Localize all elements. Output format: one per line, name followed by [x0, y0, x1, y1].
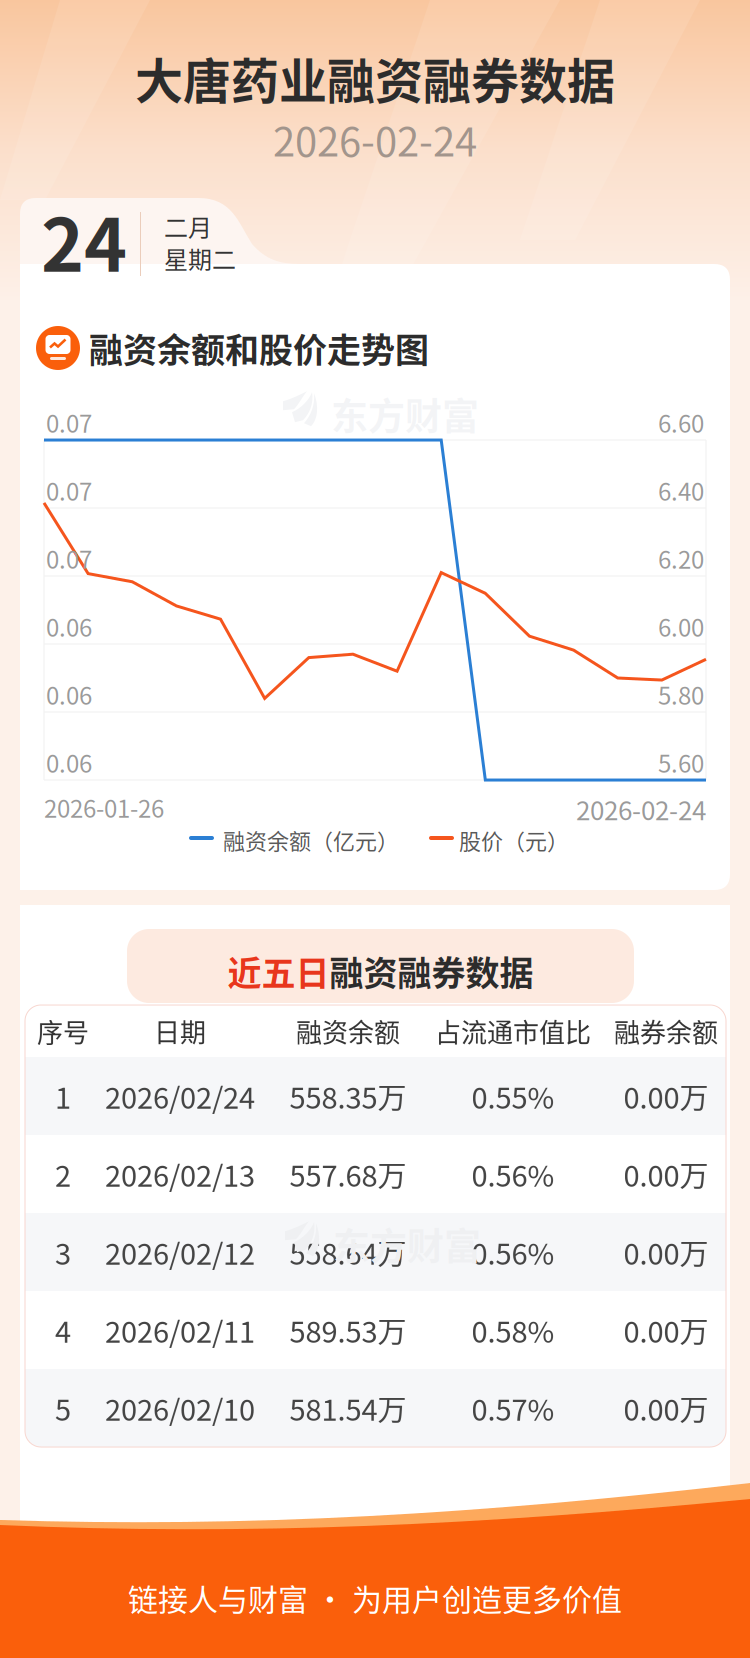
staticText: 0.00万: [623, 1231, 708, 1273]
staticText: 近五日: [227, 946, 329, 996]
staticText: 0.00万: [623, 1075, 708, 1117]
staticText: 2026/02/11: [105, 1309, 255, 1351]
staticText: 0.56%: [471, 1231, 554, 1273]
staticText: 558.64万: [289, 1231, 406, 1273]
staticText: 0.07: [46, 405, 92, 440]
staticText: 5: [55, 1387, 71, 1429]
staticText: 0.58%: [471, 1309, 554, 1351]
staticText: 5.60: [658, 745, 704, 780]
staticText: 融资余额: [296, 1012, 400, 1050]
staticText: 2026/02/24: [105, 1075, 255, 1117]
staticText: 558.35万: [289, 1075, 406, 1117]
staticText: 6.60: [658, 405, 704, 440]
staticText: 链接人与财富 · 为用户创造更多价值: [128, 1576, 622, 1619]
staticText: 6.40: [658, 473, 704, 508]
staticText: 3: [55, 1231, 71, 1273]
staticText: 日期: [154, 1012, 206, 1050]
staticText: 2026-02-24: [273, 110, 477, 168]
staticText: 东方财富: [331, 387, 479, 441]
staticText: 0.06: [46, 677, 92, 712]
staticText: 5.80: [658, 677, 704, 712]
staticText: 4: [55, 1309, 71, 1351]
staticText: 序号: [37, 1012, 89, 1050]
staticText: 0.00万: [623, 1153, 708, 1195]
staticText: 589.53万: [289, 1309, 406, 1351]
staticText: 6.00: [658, 609, 704, 644]
staticText: 2026-02-24: [576, 790, 706, 828]
staticText: 0.55%: [471, 1075, 554, 1117]
staticText: 星期二: [164, 241, 236, 276]
staticText: 占流通市值比: [435, 1012, 591, 1050]
staticText: 0.06: [46, 745, 92, 780]
staticText: 股价（元）: [459, 824, 569, 856]
staticText: 24: [41, 187, 127, 293]
staticText: 0.00万: [623, 1387, 708, 1429]
staticText: 融资余额和股价走势图: [89, 323, 429, 373]
staticText: 2026/02/12: [105, 1231, 255, 1273]
staticText: 581.54万: [289, 1387, 406, 1429]
staticText: 1: [55, 1075, 71, 1117]
staticText: 0.56%: [471, 1153, 554, 1195]
staticText: 0.06: [46, 609, 92, 644]
staticText: 0.57%: [471, 1387, 554, 1429]
staticText: 0.00万: [623, 1309, 708, 1351]
staticText: 二月: [164, 209, 212, 244]
staticText: 6.20: [658, 541, 704, 576]
staticText: 融资余额（亿元）: [223, 824, 399, 856]
staticText: 融券余额: [614, 1012, 718, 1050]
staticText: 0.07: [46, 541, 92, 576]
staticText: 2026/02/13: [105, 1153, 255, 1195]
staticText: 融资融券数据: [329, 946, 533, 996]
staticText: 大唐药业融资融券数据: [135, 43, 615, 112]
staticText: 2: [55, 1153, 71, 1195]
staticText: 557.68万: [289, 1153, 406, 1195]
staticText: 2026/02/10: [105, 1387, 255, 1429]
staticText: 东方财富: [333, 1217, 481, 1271]
staticText: 0.07: [46, 473, 92, 508]
staticText: 2026-01-26: [44, 790, 164, 825]
